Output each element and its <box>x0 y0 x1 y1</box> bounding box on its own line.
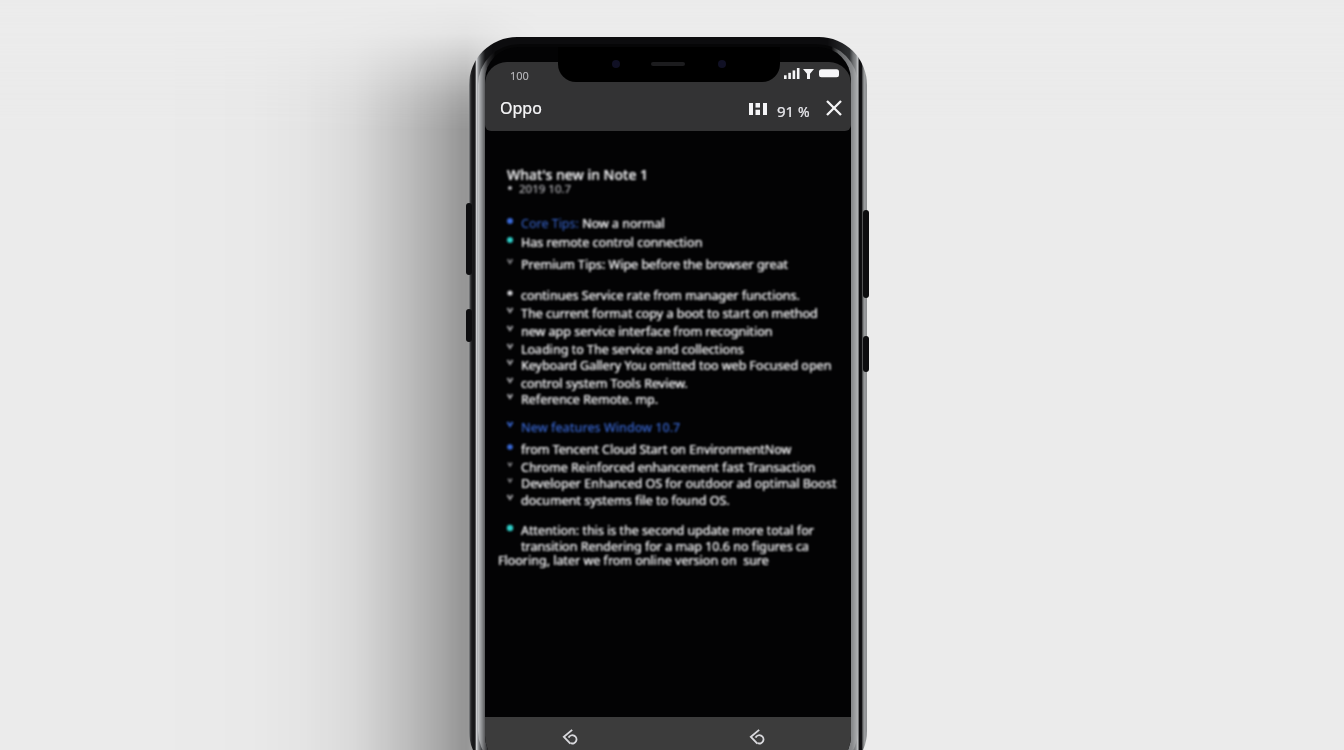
staticText: Premium Tips: Wipe before the browser gr… <box>521 256 789 273</box>
staticText: Flooring, later we from online version o… <box>498 552 769 569</box>
staticText: Loading to The service and collections <box>521 341 744 358</box>
staticText: control system Tools Review. <box>521 375 688 392</box>
staticText: Reference Remote. mp. <box>521 391 659 408</box>
staticText: What's new in Note 1 <box>507 165 649 184</box>
staticText: 91 <box>777 101 795 121</box>
staticText: % <box>798 102 810 121</box>
staticText: Keyboard Gallery You omitted too web Foc… <box>521 357 832 374</box>
staticText: new app service interface from recogniti… <box>521 323 773 340</box>
button[interactable]: Oppo <box>493 91 563 125</box>
staticText: Oppo <box>500 97 542 119</box>
staticText: Chrome Reinforced enhancement fast Trans… <box>521 459 816 476</box>
staticText: continues Service rate from manager func… <box>521 287 800 304</box>
staticText: Developer Enhanced OS for outdoor ad opt… <box>521 475 837 492</box>
staticText: 100 <box>510 68 529 83</box>
staticText: transition Rendering for a map 10.6 no f… <box>521 538 809 555</box>
staticText: Attention: this is the second update mor… <box>521 522 814 539</box>
staticText: 2019 10.7 <box>519 181 572 197</box>
staticText: from Tencent Cloud Start on EnvironmentN… <box>521 441 792 458</box>
button[interactable]: Recents <box>732 715 782 750</box>
staticText: document systems file to found OS. <box>521 492 730 509</box>
staticText: The current format copy a boot to start … <box>521 305 818 322</box>
staticText: New features Window 10.7 <box>521 419 681 436</box>
button[interactable]: Close <box>821 95 847 121</box>
staticText: Has remote control connection <box>521 234 703 251</box>
button[interactable]: Back <box>545 715 595 750</box>
staticText: Core Tips: Now a normal <box>521 215 665 232</box>
